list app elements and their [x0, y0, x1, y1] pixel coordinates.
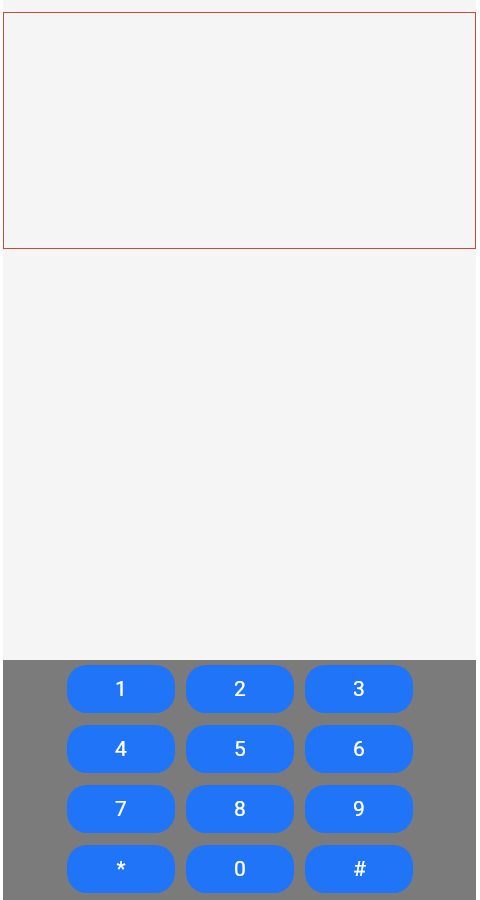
- staticText: 4: [115, 737, 127, 762]
- button[interactable]: 1: [67, 665, 175, 713]
- button[interactable]: 9: [305, 785, 413, 833]
- button[interactable]: 5: [186, 725, 294, 773]
- button[interactable]: 7: [67, 785, 175, 833]
- staticText: *: [116, 857, 126, 882]
- staticText: #: [353, 857, 366, 882]
- button[interactable]: 8: [186, 785, 294, 833]
- staticText: 0: [234, 857, 246, 882]
- staticText: 5: [234, 737, 246, 762]
- staticText: 9: [353, 797, 365, 822]
- staticText: 3: [353, 677, 365, 702]
- staticText: 2: [234, 677, 246, 702]
- button[interactable]: Pound: [305, 845, 413, 893]
- button[interactable]: 3: [305, 665, 413, 713]
- staticText: 6: [353, 737, 365, 762]
- button[interactable]: 0: [186, 845, 294, 893]
- staticText: 7: [115, 797, 127, 822]
- staticText: 1: [115, 677, 127, 702]
- button[interactable]: Phone number: [3, 12, 476, 249]
- button[interactable]: Star: [67, 845, 175, 893]
- staticText: 8: [234, 797, 246, 822]
- button[interactable]: 2: [186, 665, 294, 713]
- button[interactable]: 6: [305, 725, 413, 773]
- button[interactable]: 4: [67, 725, 175, 773]
